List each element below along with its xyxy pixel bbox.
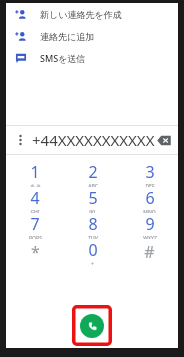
staticText: 新しい連絡先を作成: [40, 9, 122, 20]
button[interactable]: 3: [121, 161, 178, 187]
button[interactable]: More options: [6, 126, 178, 154]
button[interactable]: 連絡先に追加: [6, 25, 178, 47]
button[interactable]: 0: [64, 239, 121, 265]
button[interactable]: 2: [64, 161, 121, 187]
button[interactable]: 6: [121, 187, 178, 213]
staticText: 3: [145, 161, 155, 183]
staticText: JKL: [89, 209, 97, 213]
button[interactable]: *: [6, 239, 64, 265]
staticText: PQRS: [29, 235, 42, 239]
staticText: 2: [88, 161, 98, 183]
staticText: DEF: [145, 183, 155, 187]
staticText: MNO: [143, 209, 156, 213]
staticText: 8: [88, 213, 98, 235]
button[interactable]: 8: [64, 213, 121, 239]
staticText: ABC: [88, 183, 98, 187]
staticText: 5: [88, 187, 98, 209]
button[interactable]: Call: [80, 314, 104, 338]
staticText: ⌾⌾: [29, 183, 42, 187]
button[interactable]: 4: [6, 187, 64, 213]
button[interactable]: #: [121, 239, 178, 265]
button[interactable]: More options: [12, 132, 28, 148]
button[interactable]: 7: [6, 213, 64, 239]
staticText: +44XXXXXXXXXXX: [32, 130, 156, 150]
staticText: 0: [88, 239, 98, 261]
staticText: +: [91, 261, 94, 265]
staticText: 連絡先に追加: [40, 31, 95, 42]
staticText: WXYZ: [143, 235, 157, 239]
staticText: 4: [30, 187, 40, 209]
button[interactable]: 新しい連絡先を作成: [6, 3, 178, 25]
staticText: *: [31, 241, 40, 263]
staticText: SMSを送信: [40, 52, 86, 64]
staticText: 9: [145, 213, 155, 235]
staticText: TUV: [88, 235, 98, 239]
button[interactable]: Backspace: [156, 133, 172, 147]
button[interactable]: 5: [64, 187, 121, 213]
staticText: 1: [30, 161, 40, 183]
staticText: 6: [145, 187, 155, 209]
staticText: GHI: [30, 209, 40, 213]
staticText: #: [144, 241, 155, 263]
button[interactable]: 9: [121, 213, 178, 239]
staticText: 7: [30, 213, 40, 235]
button[interactable]: 1: [6, 161, 64, 187]
button[interactable]: SMSを送信: [6, 47, 178, 69]
